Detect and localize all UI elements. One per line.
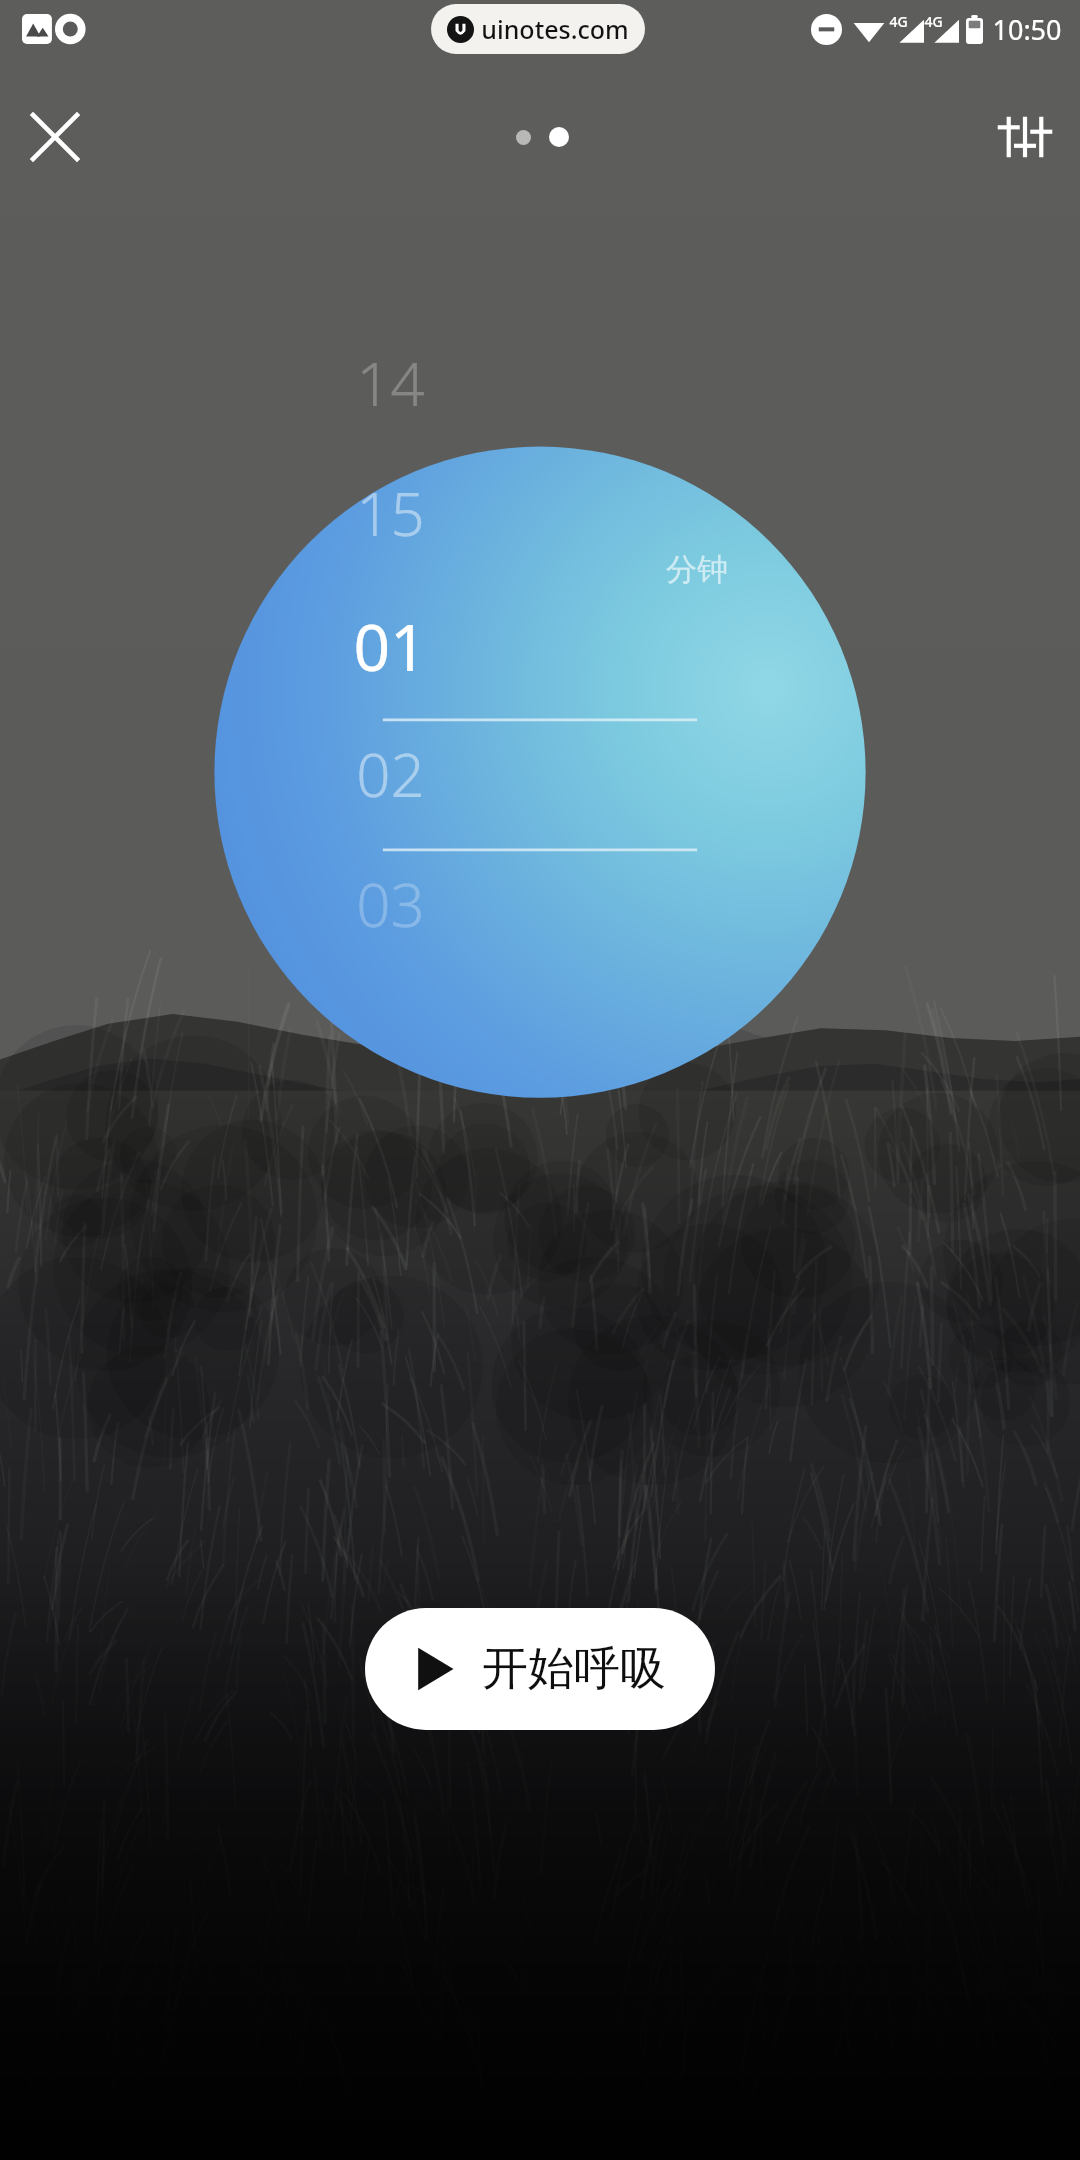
staticText: 01 xyxy=(353,603,427,690)
staticText: 分钟 xyxy=(666,550,728,589)
staticText: 4G xyxy=(924,12,943,31)
staticText: 开始呼吸 xyxy=(482,1640,666,1698)
button[interactable]: 开始呼吸 xyxy=(365,1608,715,1730)
staticText: uinotes.com xyxy=(481,12,629,46)
staticText: 14 xyxy=(356,342,425,424)
staticText: 02 xyxy=(356,733,425,815)
staticText: 4G xyxy=(889,12,908,31)
button[interactable]: Close xyxy=(20,102,90,172)
staticText: 10:50 xyxy=(992,11,1062,48)
button[interactable]: Settings xyxy=(990,102,1060,172)
staticText: 15 xyxy=(356,472,425,554)
staticText: 03 xyxy=(356,863,425,945)
